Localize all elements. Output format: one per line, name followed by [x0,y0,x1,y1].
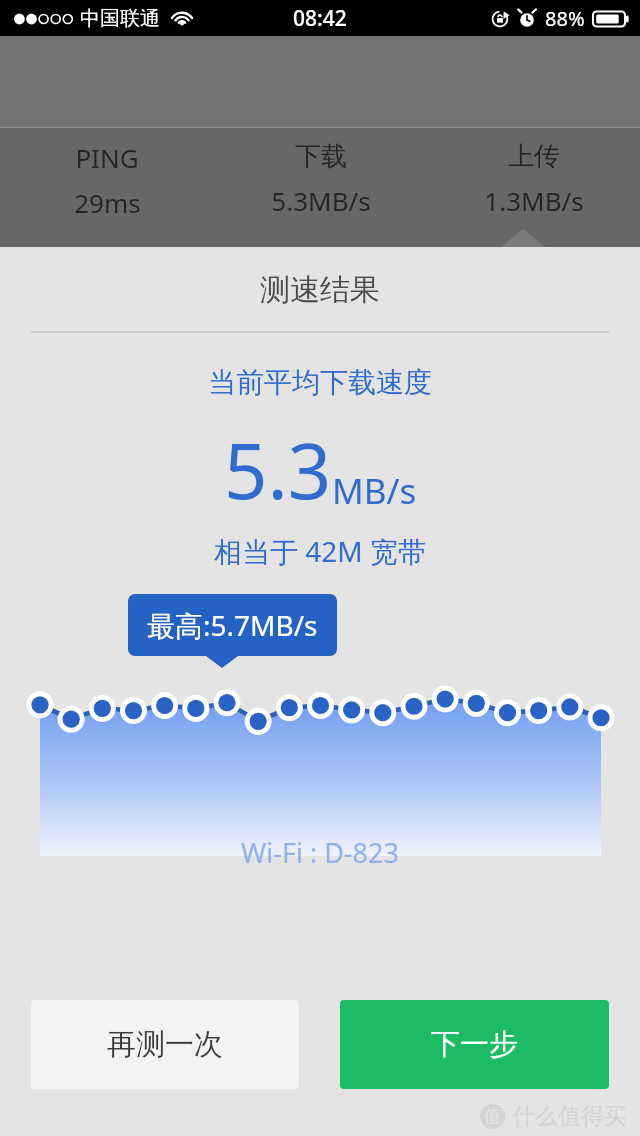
staticText: 5.3MB/s [271,183,371,218]
staticText: 当前平均下载速度 [0,365,640,400]
staticText: 08:42 [293,4,347,33]
staticText: 88% [545,5,585,32]
staticText: 相当于 42M 宽带 [0,532,640,570]
staticText: 下一步 [431,1026,518,1063]
staticText: 测速结果 [0,271,640,309]
staticText: 中国联通 [80,6,160,31]
staticText: 值 [484,1106,501,1127]
staticText: 最高:5.7MB/s [147,606,318,644]
staticText: 29ms [74,185,141,220]
staticText: 上传 [508,140,560,173]
staticText: PING [75,140,139,175]
button[interactable]: 下一步 [340,1000,609,1089]
staticText: 什么值得买 [512,1102,627,1131]
button[interactable]: 再测一次 [31,1000,299,1089]
staticText: 下载 [295,140,347,173]
staticText: Wi-Fi : D-823 [0,834,640,871]
staticText: 1.3MB/s [484,183,584,218]
staticText: 再测一次 [107,1026,223,1063]
staticText: 5.3 [224,418,332,522]
staticText: MB/s [332,467,417,515]
